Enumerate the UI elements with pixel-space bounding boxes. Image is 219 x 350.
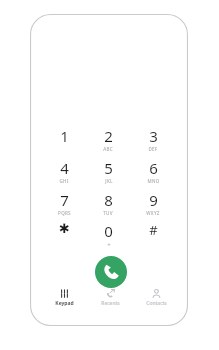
button[interactable]: ✱	[44, 221, 84, 247]
staticText: ABC	[103, 146, 113, 152]
staticText: MNO	[147, 178, 160, 184]
staticText: 9	[149, 190, 158, 210]
staticText: DEF	[148, 146, 158, 152]
staticText: PQRS	[58, 210, 71, 216]
staticText: 0	[104, 221, 113, 241]
staticText: WXYZ	[146, 210, 160, 216]
staticText: 7	[60, 190, 69, 210]
button[interactable]: Contacts	[136, 289, 176, 313]
staticText: 5	[104, 158, 113, 178]
button[interactable]: 6	[133, 158, 173, 184]
button[interactable]: Keypad	[44, 289, 84, 313]
staticText: ✱	[59, 221, 70, 236]
staticText: +	[107, 241, 111, 247]
staticText: 6	[149, 158, 158, 178]
button[interactable]: 3	[133, 126, 173, 152]
button[interactable]: 9	[133, 190, 173, 216]
staticText: 8	[104, 190, 113, 210]
staticText: 3	[149, 126, 158, 146]
staticText: 4	[60, 158, 69, 178]
staticText: Keypad	[55, 300, 74, 307]
staticText: GHI	[59, 178, 69, 184]
staticText: 1	[60, 126, 69, 146]
button[interactable]: 0	[88, 221, 128, 247]
button[interactable]: #	[133, 221, 173, 247]
button[interactable]: 8	[88, 190, 128, 216]
button[interactable]: 1	[44, 126, 84, 152]
button[interactable]: 4	[44, 158, 84, 184]
button[interactable]: 5	[88, 158, 128, 184]
button[interactable]: Recents	[90, 289, 130, 313]
button[interactable]: Call	[95, 256, 127, 288]
staticText: Recents	[101, 300, 120, 307]
staticText: 2	[104, 126, 113, 146]
staticText: TUV	[103, 210, 113, 216]
staticText: Contacts	[146, 300, 167, 307]
button[interactable]: 7	[44, 190, 84, 216]
staticText: JKL	[105, 178, 113, 184]
staticText: #	[149, 221, 158, 239]
button[interactable]: 2	[88, 126, 128, 152]
